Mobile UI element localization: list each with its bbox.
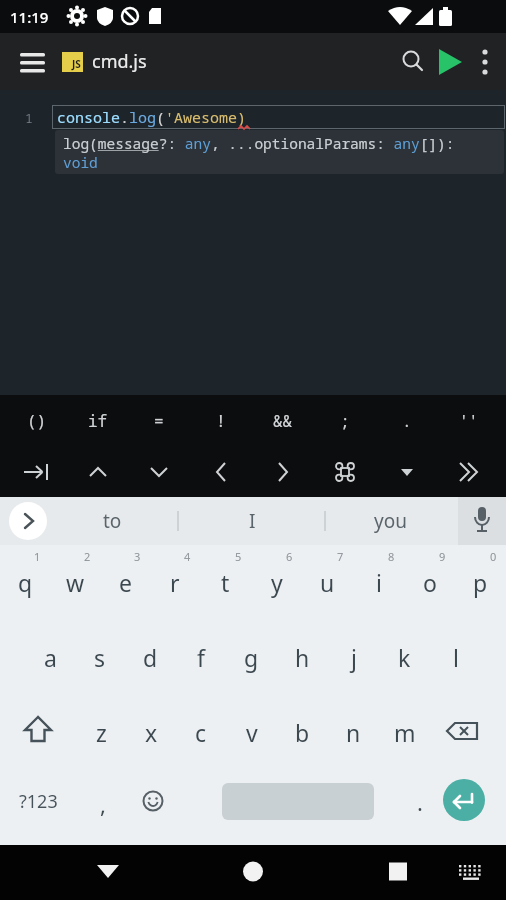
button[interactable]: ; [314,395,376,446]
button[interactable]: you [330,497,450,545]
button[interactable]: c [176,695,226,770]
button[interactable]: JS [62,52,83,72]
button[interactable] [128,770,178,845]
button[interactable] [374,845,422,900]
staticText: o [423,567,437,598]
button[interactable]: if [67,395,128,446]
staticText: 9 [439,549,446,564]
button[interactable]: v [226,695,277,770]
button[interactable] [229,845,277,900]
button[interactable] [190,446,252,497]
button[interactable]: q [0,545,50,620]
button[interactable]: = [128,395,190,446]
staticText: p [473,567,488,598]
staticText: j [351,642,357,673]
button[interactable] [432,33,470,90]
staticText: = [154,410,164,432]
button[interactable]: s [75,620,125,695]
button[interactable] [67,446,128,497]
button[interactable]: z [76,695,126,770]
button[interactable]: n [328,695,379,770]
staticText: 8 [388,549,395,564]
button[interactable]: o [404,545,455,620]
staticText: cmd.js [92,49,147,74]
staticText: '' [459,410,479,432]
button[interactable]: k [379,620,430,695]
button[interactable]: r [150,545,200,620]
button[interactable]: x [126,695,176,770]
button[interactable]: e [100,545,150,620]
staticText: 1 [25,109,33,127]
button[interactable]: l [430,620,481,695]
button[interactable]: a [25,620,75,695]
staticText: , [100,789,106,819]
staticText: a [44,642,57,673]
button[interactable]: p [455,545,506,620]
button[interactable] [394,33,432,90]
button[interactable] [314,446,376,497]
staticText: e [119,567,132,598]
staticText: f [197,642,205,673]
staticText: m [394,717,416,748]
button[interactable]: log(message?: any, ...optionalParams: an… [55,130,504,174]
button[interactable]: y [251,545,302,620]
staticText: log(message?: any, ...optionalParams: an… [63,133,464,172]
button[interactable]: ?123 [0,770,76,845]
staticText: u [320,567,335,598]
button[interactable]: I [185,497,320,545]
staticText: 4 [184,549,191,564]
button[interactable]: , [78,770,128,845]
button[interactable] [376,446,438,497]
button[interactable]: ! [190,395,252,446]
button[interactable] [470,33,506,90]
button[interactable] [84,845,132,900]
button[interactable]: d [125,620,175,695]
staticText: 3 [134,549,141,564]
staticText: x [145,717,158,748]
button[interactable] [6,446,67,497]
button[interactable] [12,42,52,82]
staticText: 6 [286,549,293,564]
staticText: b [295,717,310,748]
staticText: v [246,717,258,748]
button[interactable]: && [252,395,314,446]
staticText: z [96,717,107,748]
button[interactable]: t [200,545,251,620]
button[interactable]: j [328,620,379,695]
staticText: () [27,410,47,432]
button[interactable]: f [175,620,226,695]
button[interactable]: g [226,620,277,695]
button[interactable]: b [277,695,328,770]
button[interactable] [0,695,76,770]
button[interactable] [443,779,485,821]
button[interactable] [252,446,314,497]
button[interactable]: () [6,395,67,446]
button[interactable]: . [376,395,438,446]
staticText: && [273,410,293,432]
staticText: g [244,642,259,673]
button[interactable]: . [395,770,445,845]
button[interactable]: u [302,545,353,620]
button[interactable] [128,446,190,497]
button[interactable]: i [353,545,404,620]
staticText: ?123 [19,789,58,814]
staticText: h [295,642,310,673]
staticText: k [398,642,411,673]
button[interactable]: w [50,545,100,620]
button[interactable] [9,502,47,540]
button[interactable]: console.log('Awesome) [52,105,505,129]
button[interactable]: to [60,497,165,545]
staticText: y [271,567,283,598]
button[interactable] [430,695,506,770]
staticText: ; [340,410,350,432]
button[interactable] [438,446,500,497]
button[interactable]: '' [438,395,500,446]
button[interactable]: h [277,620,328,695]
button[interactable] [450,845,492,900]
staticText: r [170,567,180,598]
button[interactable]: m [379,695,430,770]
button[interactable] [458,497,506,545]
staticText: s [94,642,106,673]
staticText: c [195,717,207,748]
